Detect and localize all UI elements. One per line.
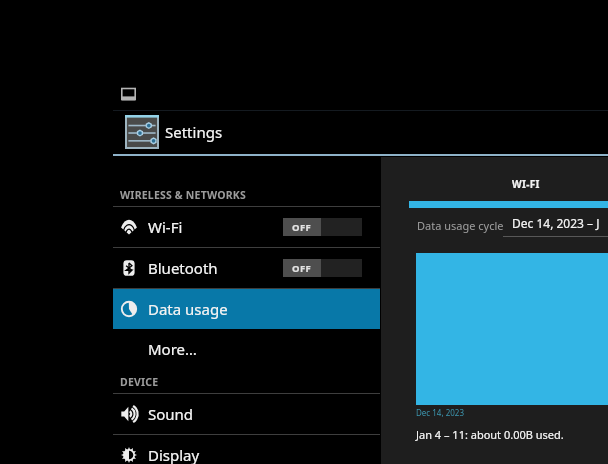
staticText: Dec 14, 2023 – J [512, 215, 600, 231]
staticText: Settings [165, 122, 223, 142]
button[interactable]: Recent apps [121, 87, 136, 102]
button[interactable]: WI-FI [409, 162, 608, 206]
staticText: Dec 14, 2023 [416, 407, 464, 418]
staticText: Wi-Fi [148, 217, 283, 237]
staticText: Jan 4 – 11: about 0.00B used. [416, 427, 564, 442]
button[interactable]: Bluetooth [113, 248, 380, 288]
staticText: OFF [292, 221, 312, 234]
button[interactable]: Toggle, off [283, 218, 362, 236]
staticText: WI-FI [512, 177, 540, 191]
staticText: OFF [292, 262, 312, 275]
button[interactable]: Dec 14, 2023 – J [503, 215, 608, 237]
staticText: Data usage cycle [417, 218, 504, 233]
button[interactable]: Sound [113, 394, 380, 434]
button[interactable]: Toggle, off [283, 259, 362, 277]
button[interactable]: Display [113, 435, 380, 464]
button[interactable]: More… [113, 329, 380, 369]
button[interactable]: Data usage [113, 289, 380, 329]
staticText: Sound [148, 404, 380, 424]
staticText: WIRELESS & NETWORKS [120, 188, 246, 202]
staticText: More… [148, 339, 380, 359]
staticText: Data usage [148, 299, 380, 319]
staticText: Bluetooth [148, 258, 283, 278]
button[interactable]: Wi-Fi [113, 207, 380, 247]
staticText: DEVICE [120, 375, 159, 389]
staticText: Display [148, 445, 380, 464]
button[interactable]: Settings [113, 111, 608, 153]
